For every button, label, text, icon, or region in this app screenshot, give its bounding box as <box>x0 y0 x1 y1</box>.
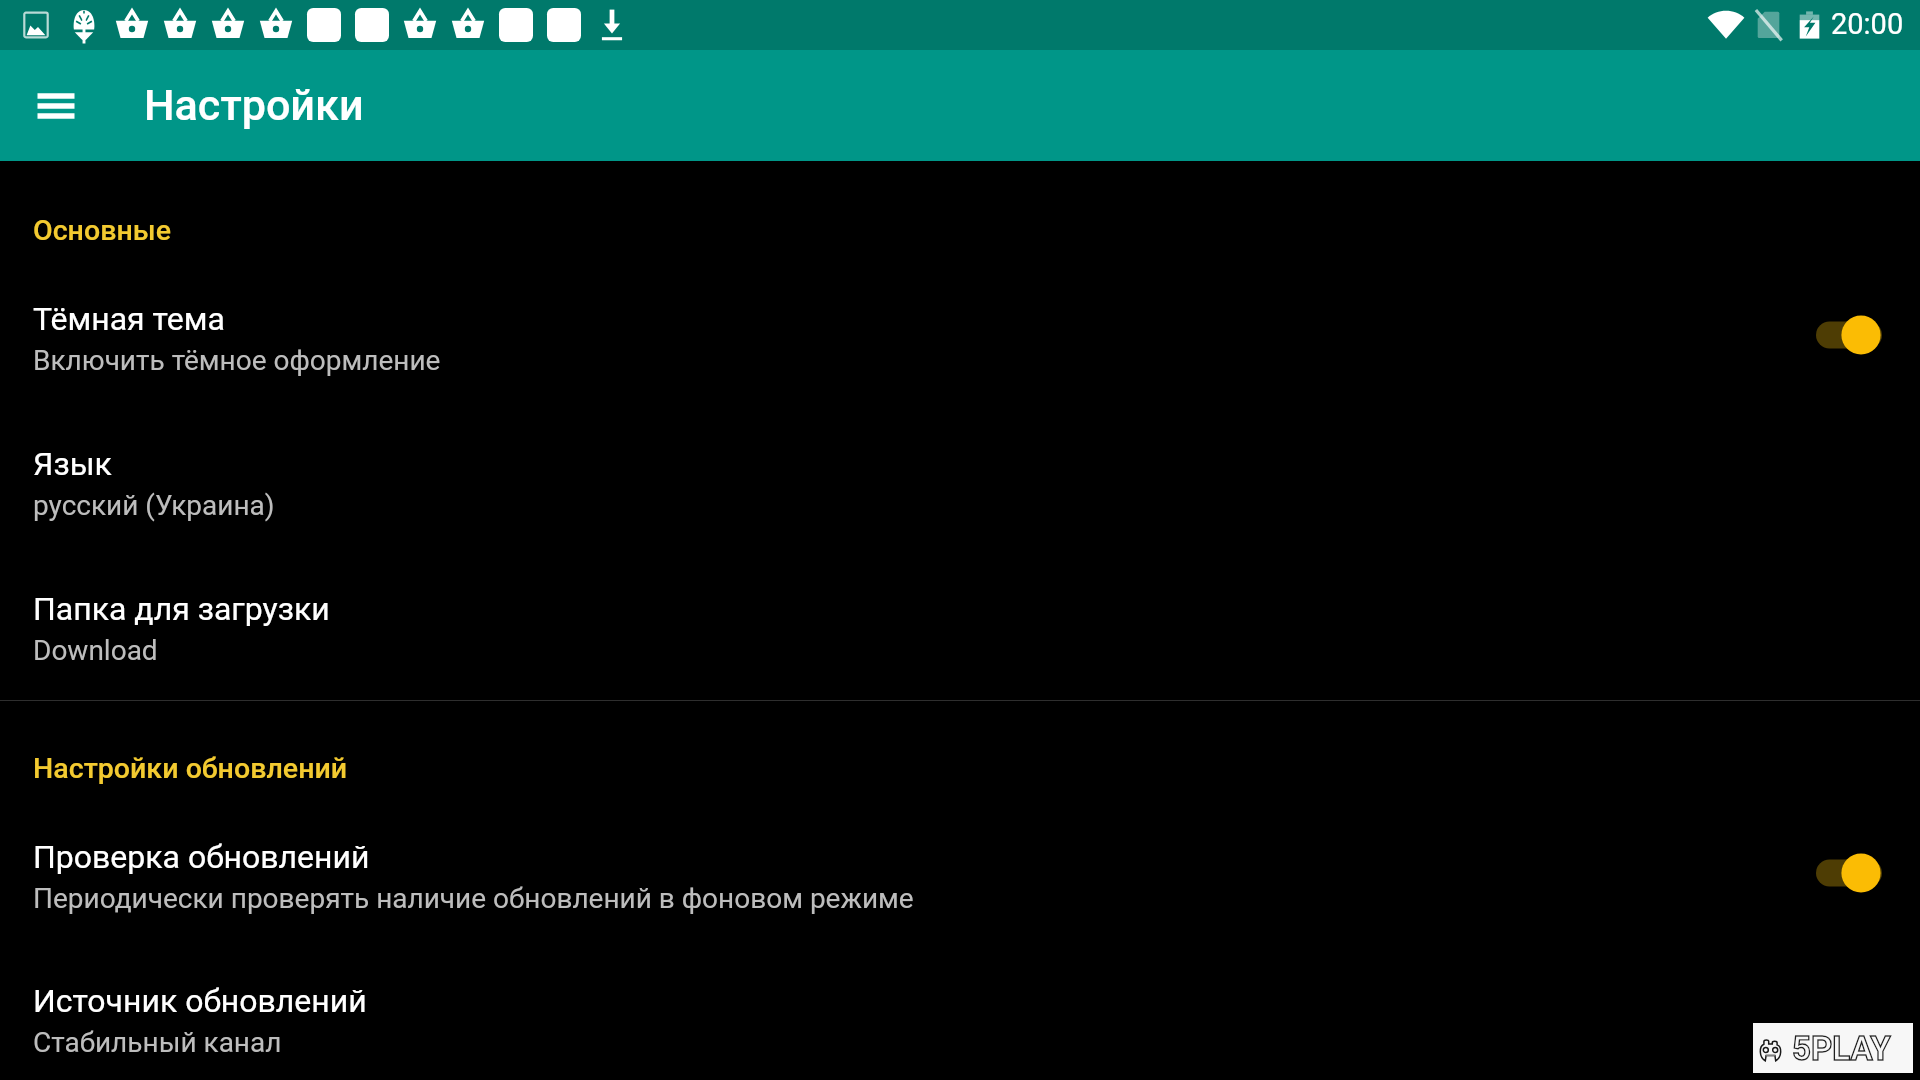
button[interactable]: Toggle Проверка обновлений <box>1792 825 1904 921</box>
staticText: Проверка обновлений <box>33 838 370 876</box>
staticText: Настройки <box>144 80 364 130</box>
staticText: Папка для загрузки <box>33 590 330 628</box>
button[interactable]: Папка для загрузки <box>0 568 1920 676</box>
staticText: Язык <box>33 445 112 483</box>
staticText: Настройки обновлений <box>33 752 348 785</box>
button[interactable]: Проверка обновлений <box>0 816 1920 924</box>
button[interactable]: Toggle Тёмная тема <box>1792 287 1904 383</box>
button[interactable]: Язык <box>0 423 1920 531</box>
staticText: Источник обновлений <box>33 982 367 1020</box>
button[interactable]: Источник обновлений <box>0 960 1920 1068</box>
staticText: Включить тёмное оформление <box>33 344 441 377</box>
staticText: Стабильный канал <box>33 1026 282 1059</box>
staticText: Основные <box>33 214 172 247</box>
button[interactable]: Тёмная тема <box>0 278 1920 386</box>
staticText: Download <box>33 634 158 667</box>
button[interactable]: Open navigation menu <box>20 70 92 142</box>
staticText: 20:00 <box>1831 7 1904 41</box>
staticText: Периодически проверять наличие обновлени… <box>33 882 914 915</box>
staticText: 5PLAY <box>1792 1029 1891 1068</box>
staticText: русский (Украина) <box>33 489 275 522</box>
staticText: Тёмная тема <box>33 300 225 338</box>
